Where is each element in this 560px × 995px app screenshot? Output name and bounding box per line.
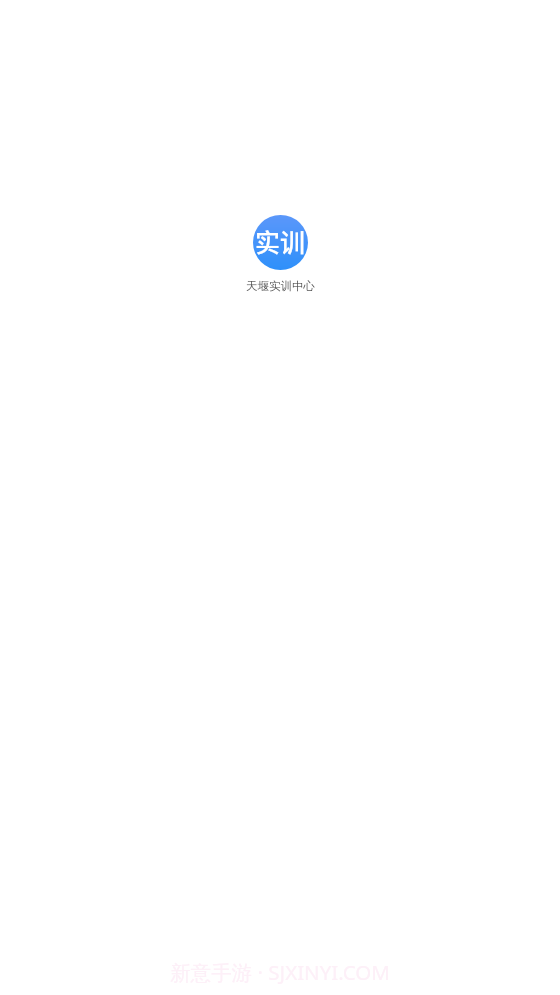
button[interactable]: 天堰实训中心 app icon	[253, 215, 308, 270]
staticText: 天堰实训中心	[246, 279, 315, 293]
staticText: 实训	[255, 223, 306, 259]
staticText: 新意手游 · SJXINYI.COM	[170, 958, 390, 986]
